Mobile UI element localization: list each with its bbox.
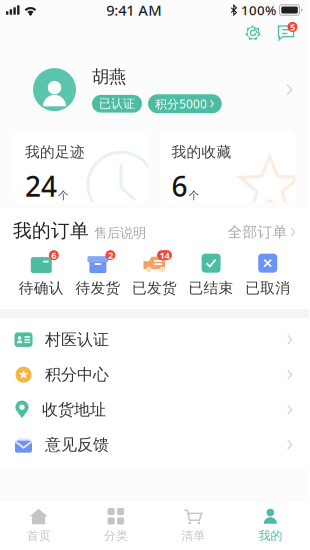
button[interactable]: 意见反馈 (0, 427, 309, 462)
button[interactable]: 首页 (0, 507, 77, 543)
staticText: 收货地址 (42, 400, 106, 419)
staticText: 已取消 (245, 279, 290, 297)
button[interactable]: 我的 (232, 507, 309, 543)
button[interactable]: 收货地址 (0, 392, 309, 427)
button[interactable]: 2 (75, 252, 120, 297)
staticText: 意见反馈 (45, 435, 109, 454)
staticText: 个 (58, 189, 69, 202)
button[interactable]: 积分中心 (0, 357, 309, 392)
button[interactable]: 积分5000 (148, 94, 222, 113)
staticText: 6 (51, 249, 56, 261)
button[interactable]: 我的收藏 (160, 130, 295, 202)
button[interactable]: 分类 (77, 507, 155, 543)
staticText: 首页 (27, 528, 51, 543)
staticText: 24 (25, 167, 57, 204)
staticText: 2 (108, 249, 113, 261)
staticText: 个 (188, 189, 199, 202)
staticText: 我的 (258, 528, 282, 543)
button[interactable]: 全部订单 (228, 223, 296, 242)
staticText: 我的足迹 (25, 143, 85, 161)
button[interactable]: 清单 (154, 507, 232, 543)
staticText: 胡燕 (92, 66, 126, 87)
staticText: 待发货 (75, 279, 120, 297)
button[interactable]: 6 (19, 252, 64, 297)
staticText: 我的订单 (13, 219, 89, 242)
staticText: 14 (159, 249, 169, 261)
button[interactable]: 我的足迹 (14, 130, 148, 202)
staticText: 积分中心 (45, 365, 109, 384)
staticText: 5 (290, 21, 295, 33)
staticText: 已结束 (189, 279, 234, 297)
staticText: 已发货 (132, 279, 177, 297)
staticText: 分类 (104, 528, 128, 543)
staticText: 100% (241, 1, 276, 19)
button[interactable]: 14 (132, 252, 177, 297)
button[interactable]: 已结束 (189, 252, 234, 297)
staticText: 我的收藏 (171, 143, 231, 161)
staticText: 村医认证 (45, 330, 109, 349)
staticText: 待确认 (19, 279, 64, 297)
button[interactable]: Messages (277, 25, 295, 41)
staticText: 全部订单 (228, 223, 288, 241)
staticText: 清单 (181, 528, 205, 543)
staticText: 积分5000 (155, 96, 207, 112)
button[interactable]: Settings (245, 25, 261, 41)
button[interactable]: 已取消 (245, 252, 290, 297)
staticText: 9:41 AM (106, 0, 161, 20)
staticText: 售后说明 (94, 225, 146, 241)
staticText: 6 (171, 167, 187, 204)
button[interactable]: 村医认证 (0, 322, 309, 357)
staticText: 已认证 (99, 96, 135, 111)
